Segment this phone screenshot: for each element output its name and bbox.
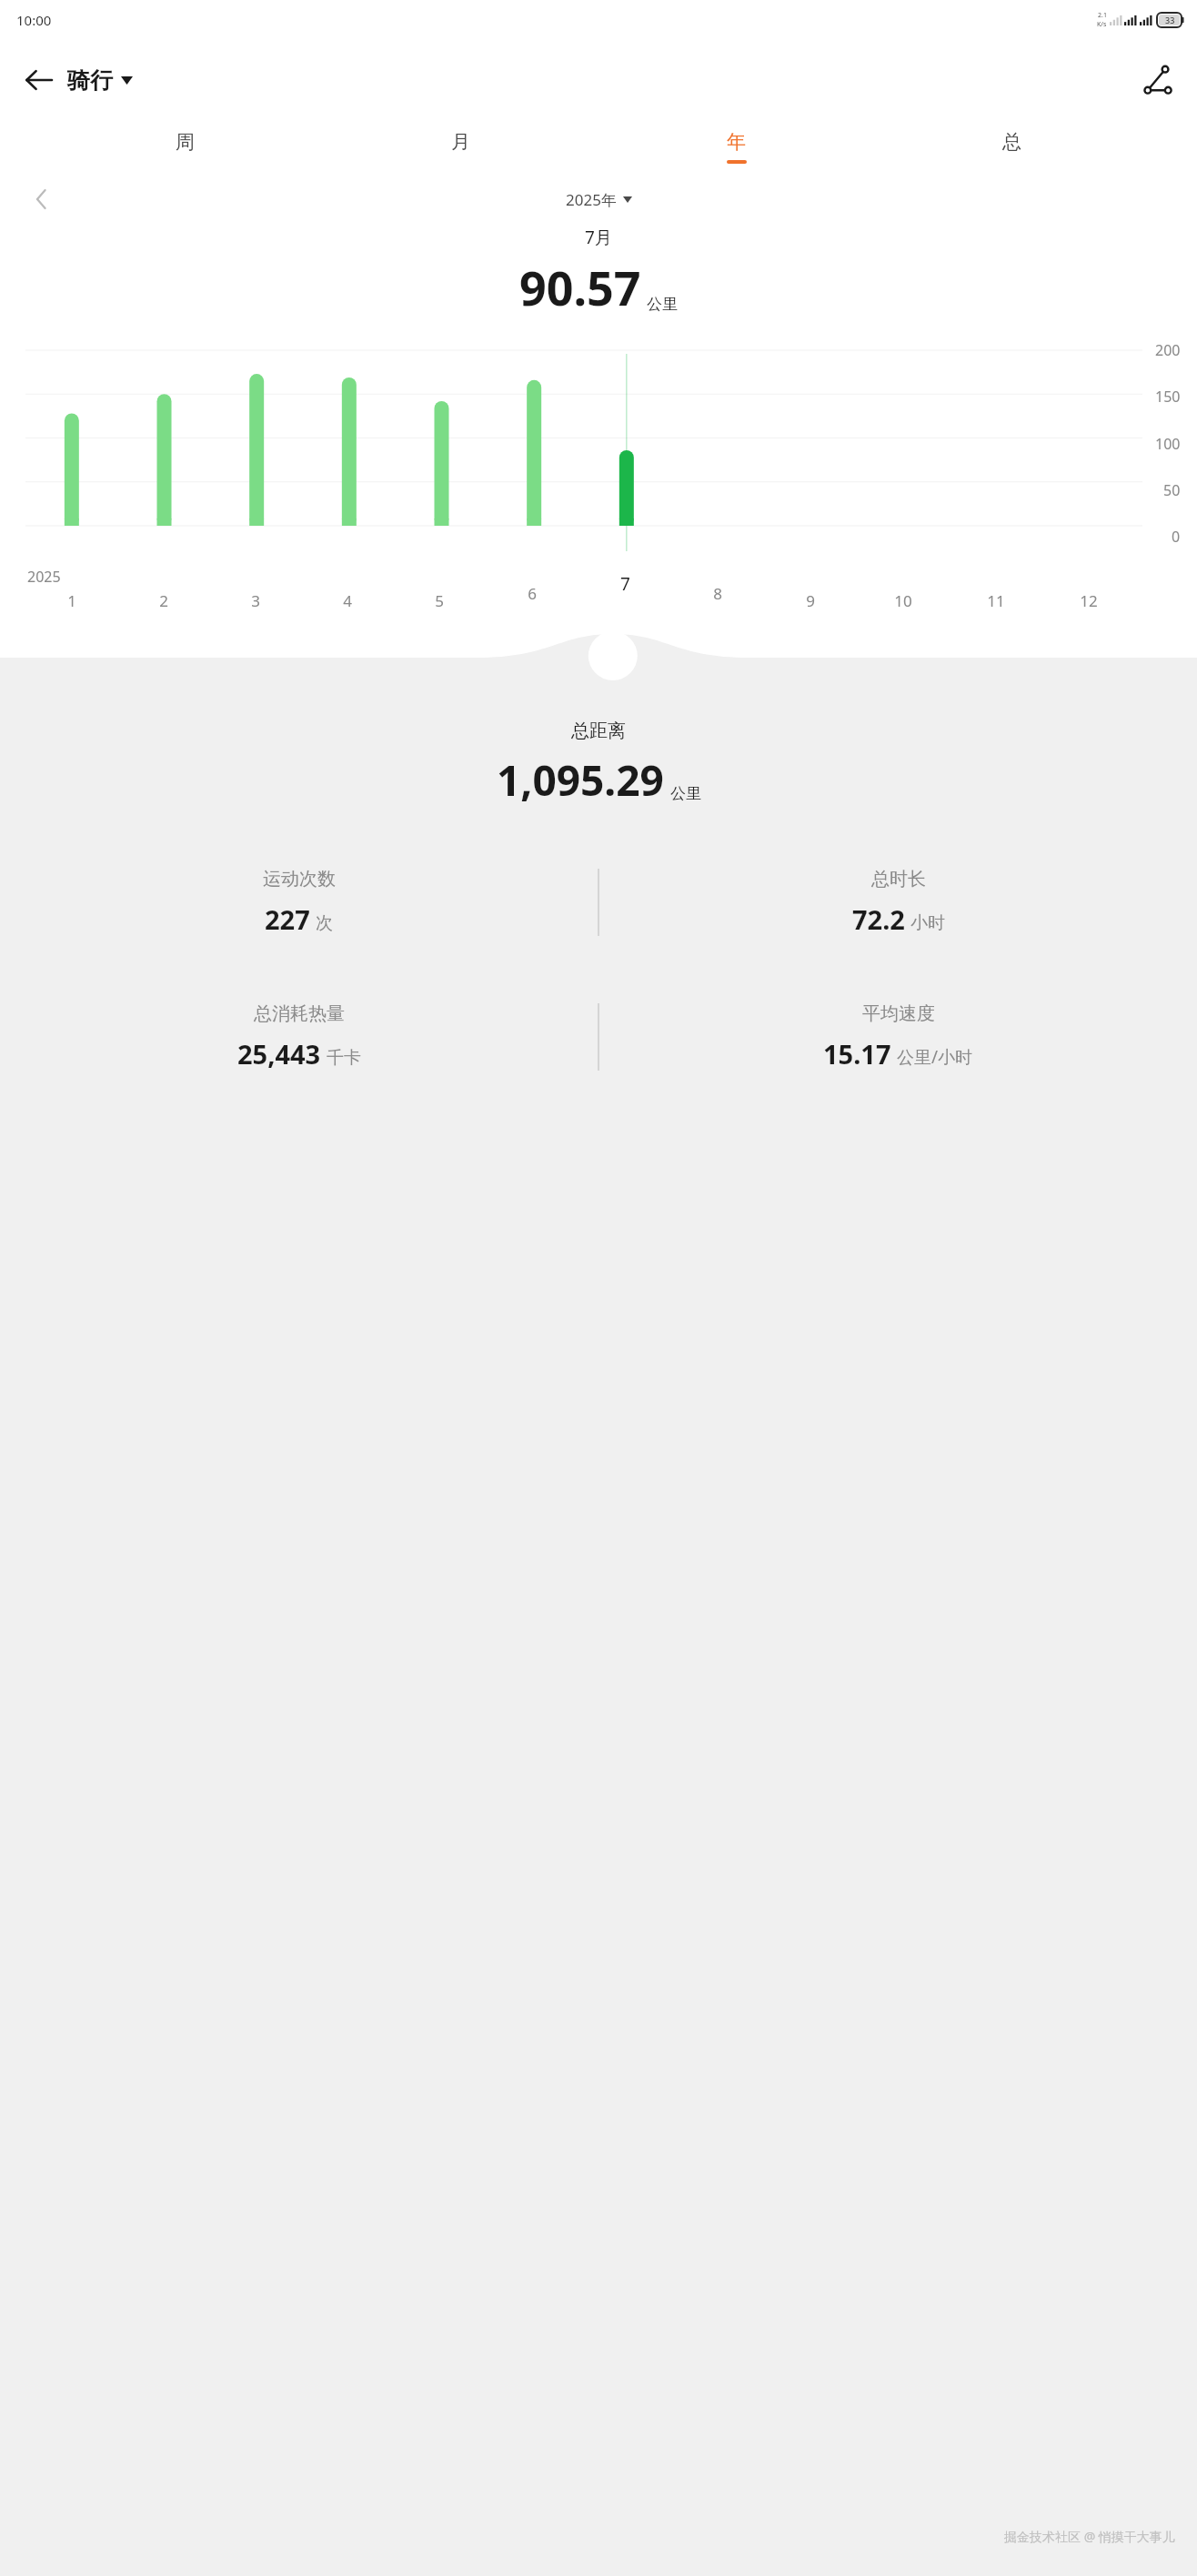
button[interactable]: 总消耗热量 bbox=[0, 1002, 598, 1072]
button[interactable]: 骑行 bbox=[67, 66, 133, 95]
button[interactable]: 月 bbox=[323, 121, 598, 173]
staticText: 0 bbox=[1172, 527, 1181, 547]
button[interactable]: 年 bbox=[598, 121, 874, 173]
staticText: 千卡 bbox=[327, 1047, 361, 1069]
staticText: 月 bbox=[451, 130, 470, 154]
staticText: 8 bbox=[713, 583, 722, 604]
staticText: 200 bbox=[1155, 340, 1181, 360]
button[interactable]: Previous year bbox=[22, 179, 62, 219]
staticText: 骑行 bbox=[67, 66, 113, 95]
button[interactable]: Back bbox=[13, 55, 64, 106]
staticText: 公里 bbox=[670, 784, 701, 803]
staticText: 次 bbox=[316, 912, 333, 934]
staticText: 运动次数 bbox=[263, 868, 336, 891]
staticText: 12 bbox=[1080, 590, 1098, 611]
staticText: K/s bbox=[1097, 20, 1107, 29]
button[interactable]: 平均速度 bbox=[599, 1002, 1197, 1072]
staticText: 33 bbox=[1165, 15, 1175, 25]
button[interactable]: 总 bbox=[874, 121, 1150, 173]
button[interactable]: Share bbox=[1133, 55, 1184, 106]
staticText: 25,443 bbox=[237, 1036, 321, 1072]
staticText: 公里 bbox=[647, 295, 678, 314]
staticText: 1 bbox=[67, 590, 76, 611]
staticText: 10:00 bbox=[16, 11, 52, 29]
staticText: 6 bbox=[528, 583, 537, 604]
staticText: 4 bbox=[343, 590, 352, 611]
staticText: 90.57 bbox=[519, 255, 641, 319]
staticText: 150 bbox=[1155, 387, 1181, 407]
staticText: 2 bbox=[159, 590, 168, 611]
button[interactable]: 2025年 bbox=[566, 189, 632, 210]
staticText: 10 bbox=[894, 590, 912, 611]
staticText: 2.1 bbox=[1098, 11, 1107, 20]
button[interactable]: 总时长 bbox=[599, 868, 1197, 937]
button[interactable]: 运动次数 bbox=[0, 868, 598, 937]
staticText: 掘金技术社区 @ 悄摸干大事儿 bbox=[1004, 2528, 1175, 2545]
staticText: 总消耗热量 bbox=[254, 1002, 345, 1025]
staticText: 227 bbox=[265, 901, 310, 937]
staticText: 总 bbox=[1002, 130, 1021, 154]
staticText: 72.2 bbox=[852, 901, 905, 937]
staticText: 年 bbox=[727, 130, 746, 154]
staticText: 总时长 bbox=[871, 868, 926, 891]
staticText: 9 bbox=[806, 590, 815, 611]
staticText: 5 bbox=[435, 590, 444, 611]
staticText: 周 bbox=[176, 130, 195, 154]
staticText: 平均速度 bbox=[862, 1002, 935, 1025]
staticText: 11 bbox=[987, 590, 1005, 611]
staticText: 2025 bbox=[27, 567, 61, 587]
staticText: 总距离 bbox=[571, 719, 626, 742]
staticText: 1,095.29 bbox=[497, 751, 664, 809]
staticText: 小时 bbox=[910, 912, 945, 934]
staticText: 100 bbox=[1155, 434, 1181, 454]
staticText: 50 bbox=[1163, 480, 1181, 500]
staticText: 公里/小时 bbox=[897, 1045, 973, 1069]
staticText: 2025年 bbox=[566, 189, 617, 210]
staticText: 3 bbox=[251, 590, 260, 611]
button[interactable]: 周 bbox=[47, 121, 323, 173]
staticText: 7月 bbox=[585, 226, 612, 249]
staticText: 7 bbox=[620, 572, 630, 596]
staticText: 15.17 bbox=[823, 1036, 891, 1072]
